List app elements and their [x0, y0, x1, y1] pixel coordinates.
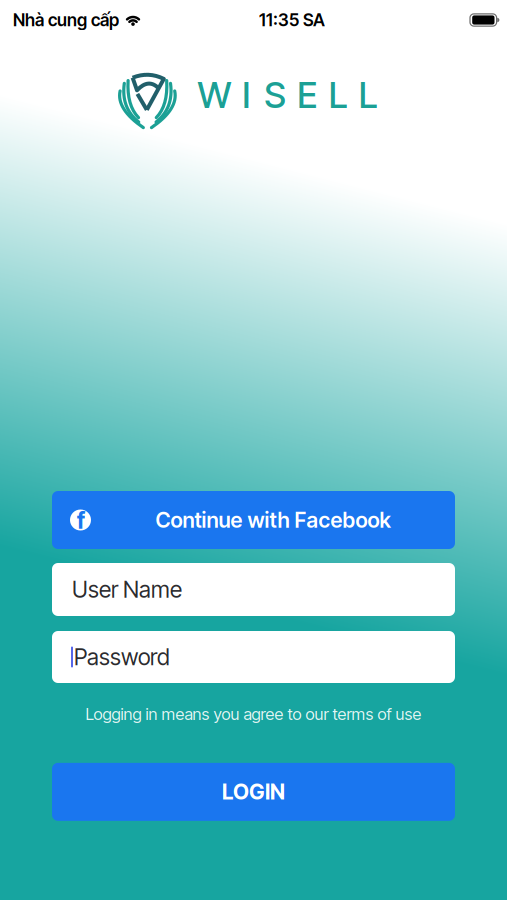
button[interactable]: f — [52, 491, 455, 549]
staticText: 11:35 SA — [259, 9, 325, 30]
staticText: User Name — [72, 576, 182, 603]
staticText: f — [77, 507, 85, 534]
staticText: L — [359, 73, 378, 117]
staticText: E — [297, 73, 317, 117]
staticText: L — [329, 73, 348, 117]
staticText: Logging in means you agree to our terms … — [85, 704, 421, 724]
staticText: Nhà cung cấp — [13, 9, 119, 30]
staticText: S — [264, 73, 286, 117]
staticText: LOGIN — [222, 779, 285, 805]
staticText: Password — [74, 643, 170, 671]
staticText: W — [197, 73, 231, 117]
staticText: I — [242, 73, 250, 117]
staticText: Continue with Facebook — [155, 507, 390, 533]
button[interactable]: LOGIN — [52, 763, 455, 821]
